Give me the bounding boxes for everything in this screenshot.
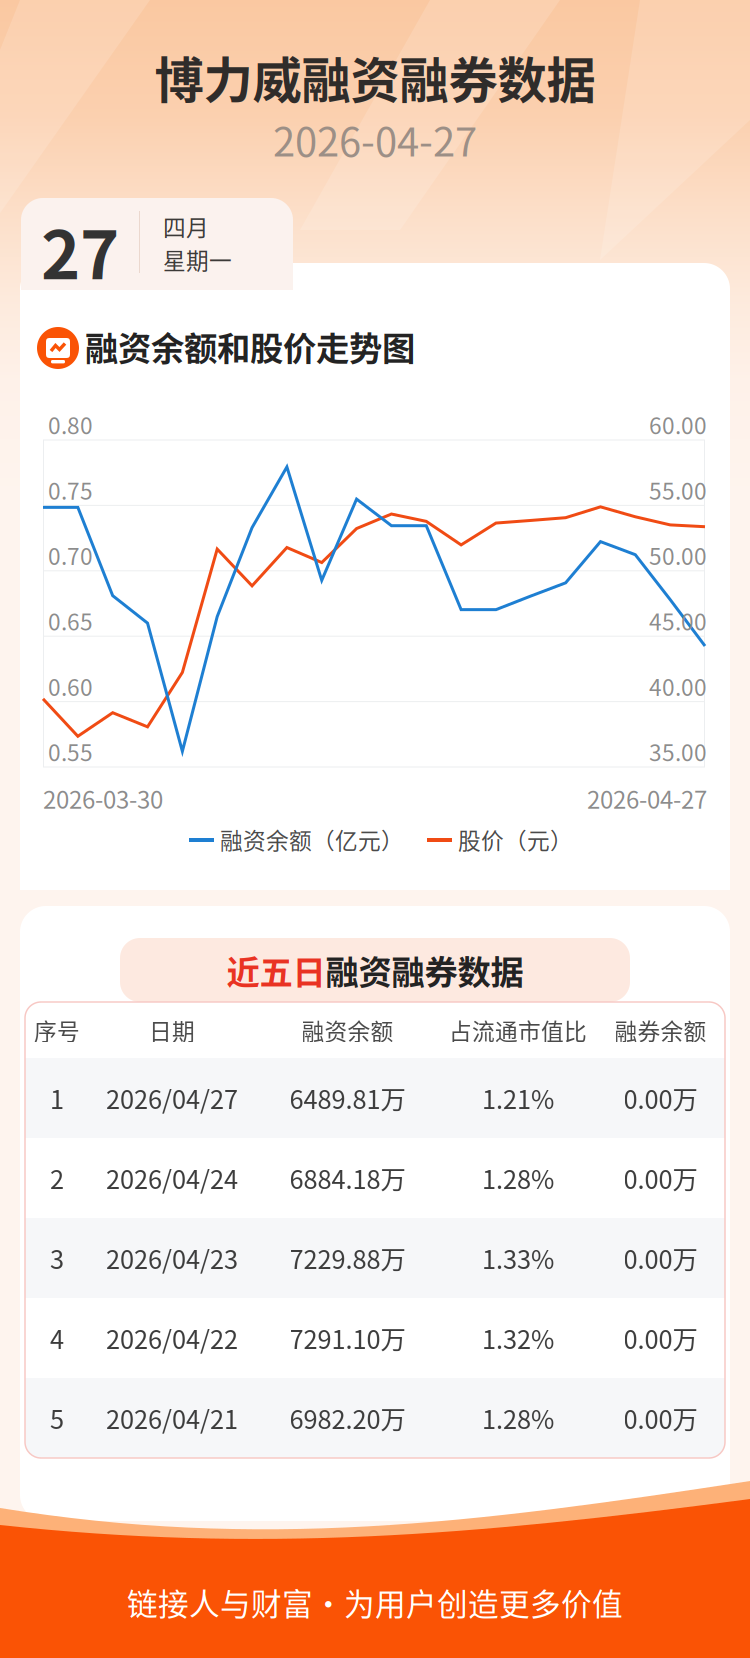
staticText: 4 <box>50 1320 64 1356</box>
staticText: 链接人与财富·为用户创造更多价值 <box>127 1580 623 1624</box>
staticText: 3 <box>50 1240 64 1276</box>
staticText: 2026-04-27 <box>273 110 477 168</box>
staticText: 0.75 <box>48 473 93 506</box>
staticText: 日期 <box>149 1014 195 1046</box>
staticText: 星期一 <box>163 243 232 276</box>
staticText: 2 <box>50 1160 64 1196</box>
staticText: 融资余额（亿元） <box>220 823 404 856</box>
staticText: 0.00万 <box>623 1400 697 1436</box>
staticText: 1.21% <box>482 1080 554 1116</box>
staticText: 27 <box>41 202 119 298</box>
staticText: 0.00万 <box>623 1160 697 1196</box>
staticText: 序号 <box>34 1014 80 1046</box>
staticText: 2026-04-27 <box>587 781 707 816</box>
staticText: 0.55 <box>48 735 93 768</box>
staticText: 7291.10万 <box>289 1320 405 1356</box>
staticText: 2026/04/23 <box>106 1240 238 1276</box>
staticText: 占流通市值比 <box>449 1014 587 1046</box>
staticText: 60.00 <box>649 408 707 441</box>
staticText: 0.65 <box>48 604 93 637</box>
staticText: 40.00 <box>649 670 707 702</box>
staticText: 0.80 <box>48 408 93 441</box>
staticText: 融资余额和股价走势图 <box>85 322 415 370</box>
staticText: 1 <box>50 1080 64 1116</box>
staticText: 2026/04/27 <box>106 1080 238 1116</box>
staticText: 0.00万 <box>623 1240 697 1276</box>
staticText: 1.33% <box>482 1240 554 1276</box>
staticText: 2026/04/21 <box>106 1400 238 1436</box>
staticText: 6982.20万 <box>289 1400 405 1436</box>
staticText: 6884.18万 <box>289 1160 405 1196</box>
staticText: 7229.88万 <box>289 1240 405 1276</box>
staticText: 四月 <box>163 210 209 243</box>
staticText: 2026/04/24 <box>106 1160 238 1196</box>
staticText: 45.00 <box>649 604 707 637</box>
staticText: 博力威融资融券数据 <box>154 41 595 112</box>
staticText: 股价（元） <box>458 823 573 856</box>
staticText: 2026-03-30 <box>43 781 163 816</box>
staticText: 近五日 <box>226 946 325 994</box>
staticText: 35.00 <box>649 735 707 768</box>
staticText: 融券余额 <box>614 1014 706 1046</box>
staticText: 55.00 <box>649 473 707 506</box>
staticText: 5 <box>50 1400 64 1436</box>
staticText: 融资融券数据 <box>325 946 523 994</box>
staticText: 2026/04/22 <box>106 1320 238 1356</box>
staticText: 0.70 <box>48 539 93 572</box>
staticText: 0.00万 <box>623 1080 697 1116</box>
staticText: 1.28% <box>482 1400 554 1436</box>
staticText: 0.60 <box>48 670 93 702</box>
staticText: 1.32% <box>482 1320 554 1356</box>
staticText: 1.28% <box>482 1160 554 1196</box>
staticText: 融资余额 <box>301 1014 393 1046</box>
staticText: 50.00 <box>649 539 707 572</box>
staticText: 0.00万 <box>623 1320 697 1356</box>
staticText: 6489.81万 <box>289 1080 405 1116</box>
